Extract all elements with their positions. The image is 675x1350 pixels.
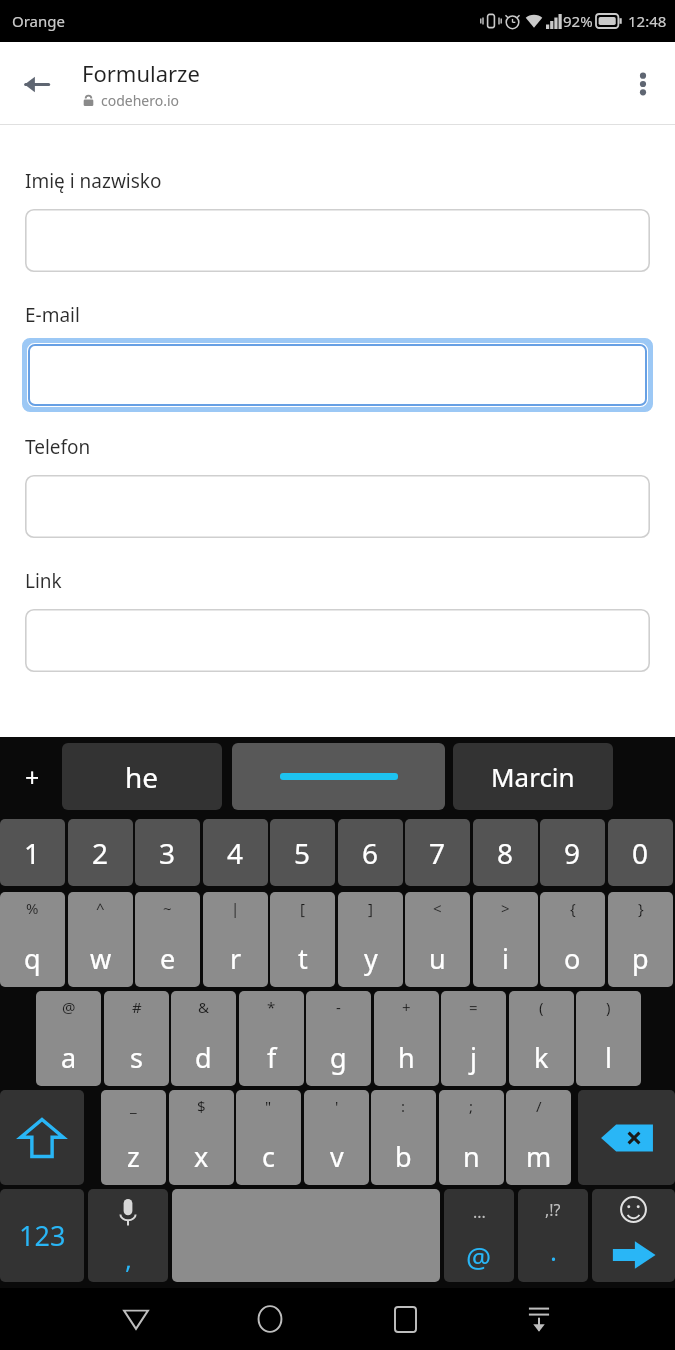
button[interactable]: Voice input [88,1189,168,1282]
button[interactable]: - [306,991,371,1086]
staticText: Imię i nazwisko [25,168,162,194]
button[interactable]: Shift [0,1090,84,1185]
button[interactable]: 8 [473,819,538,886]
button[interactable]: 2 [68,819,133,886]
button[interactable]: " [236,1090,301,1185]
staticText: + [25,760,40,794]
button[interactable]: 1 [0,819,65,886]
staticText: j [470,1039,477,1076]
staticText: e [160,940,176,977]
staticText: z [127,1138,140,1175]
button[interactable]: _ [101,1090,166,1185]
staticText: p [632,940,649,977]
button[interactable]: < [405,892,470,987]
button[interactable]: * [239,991,304,1086]
staticText: , [125,1241,132,1276]
staticText: c [262,1138,275,1175]
button[interactable]: & [171,991,236,1086]
button[interactable]: | [203,892,268,987]
button[interactable]: 123 [0,1189,84,1282]
staticText: codehero.io [101,91,180,110]
button[interactable]: $ [169,1090,234,1185]
staticText: d [195,1039,212,1076]
button[interactable]: [ [270,892,335,987]
button[interactable]: ^ [68,892,133,987]
staticText: 5 [294,834,311,872]
button[interactable]: Hide keyboard [513,1293,565,1345]
staticText: Formularze [82,58,200,88]
staticText: a [61,1039,77,1076]
button[interactable]: More options [617,58,669,110]
button[interactable]: 0 [608,819,673,886]
button[interactable]: 4 [203,819,268,886]
staticText: > [501,898,510,918]
staticText: Link [25,568,62,594]
staticText: . [550,1233,557,1268]
button[interactable]: > [473,892,538,987]
button[interactable]: Add word [8,737,56,816]
staticText: & [198,997,209,1017]
staticText: 2 [92,834,109,872]
staticText: ; [469,1096,474,1116]
button[interactable]: = [441,991,506,1086]
button[interactable]: he [62,743,222,810]
button[interactable]: + [374,991,439,1086]
staticText: ,!? [545,1199,561,1221]
button[interactable]: ; [439,1090,504,1185]
staticText: 12:48 [628,11,667,31]
button[interactable]: 6 [338,819,403,886]
staticText: 6 [362,834,379,872]
staticText: ... [473,1201,486,1223]
button[interactable]: % [0,892,65,987]
staticText: Marcin [491,759,575,794]
staticText: 9 [564,834,581,872]
staticText: 123 [19,1217,66,1254]
button[interactable]: ... [444,1189,514,1282]
button[interactable]: Marcin [453,743,613,810]
button[interactable]: Home [244,1293,296,1345]
button[interactable]: ( [509,991,574,1086]
staticText: g [330,1039,347,1076]
staticText: 0 [632,834,649,872]
staticText: { [570,898,576,918]
staticText: ^ [96,898,105,918]
button[interactable]: Back [8,56,64,112]
staticText: k [534,1039,549,1076]
button[interactable]: : [371,1090,436,1185]
button[interactable]: 9 [540,819,605,886]
button[interactable]: 3 [135,819,200,886]
button[interactable]: Back [110,1293,162,1345]
button[interactable] [232,743,445,810]
button[interactable]: 5 [270,819,335,886]
staticText: ] [368,898,373,918]
staticText: q [24,940,41,977]
staticText: r [230,940,242,977]
staticText: 92% [563,11,593,31]
button[interactable]: Enter [592,1189,675,1282]
button[interactable] [22,338,653,412]
staticText: x [194,1138,209,1175]
button[interactable]: } [608,892,673,987]
button[interactable]: # [104,991,169,1086]
button[interactable]: Backspace [578,1090,675,1185]
button[interactable]: ~ [135,892,200,987]
button[interactable]: ] [338,892,403,987]
staticText: 7 [429,834,446,872]
staticText: o [564,940,581,977]
button[interactable] [25,609,650,672]
button[interactable]: Space [172,1189,440,1282]
button[interactable]: @ [36,991,101,1086]
staticText: h [398,1039,415,1076]
staticText: % [26,898,39,918]
button[interactable]: ) [576,991,641,1086]
button[interactable]: ,!? [518,1189,588,1282]
staticText: 1 [24,834,41,872]
button[interactable]: Recent apps [379,1293,431,1345]
staticText: u [429,940,446,977]
button[interactable]: { [540,892,605,987]
button[interactable]: ' [304,1090,369,1185]
button[interactable]: / [506,1090,571,1185]
button[interactable] [25,209,650,272]
button[interactable] [25,475,650,538]
button[interactable]: 7 [405,819,470,886]
